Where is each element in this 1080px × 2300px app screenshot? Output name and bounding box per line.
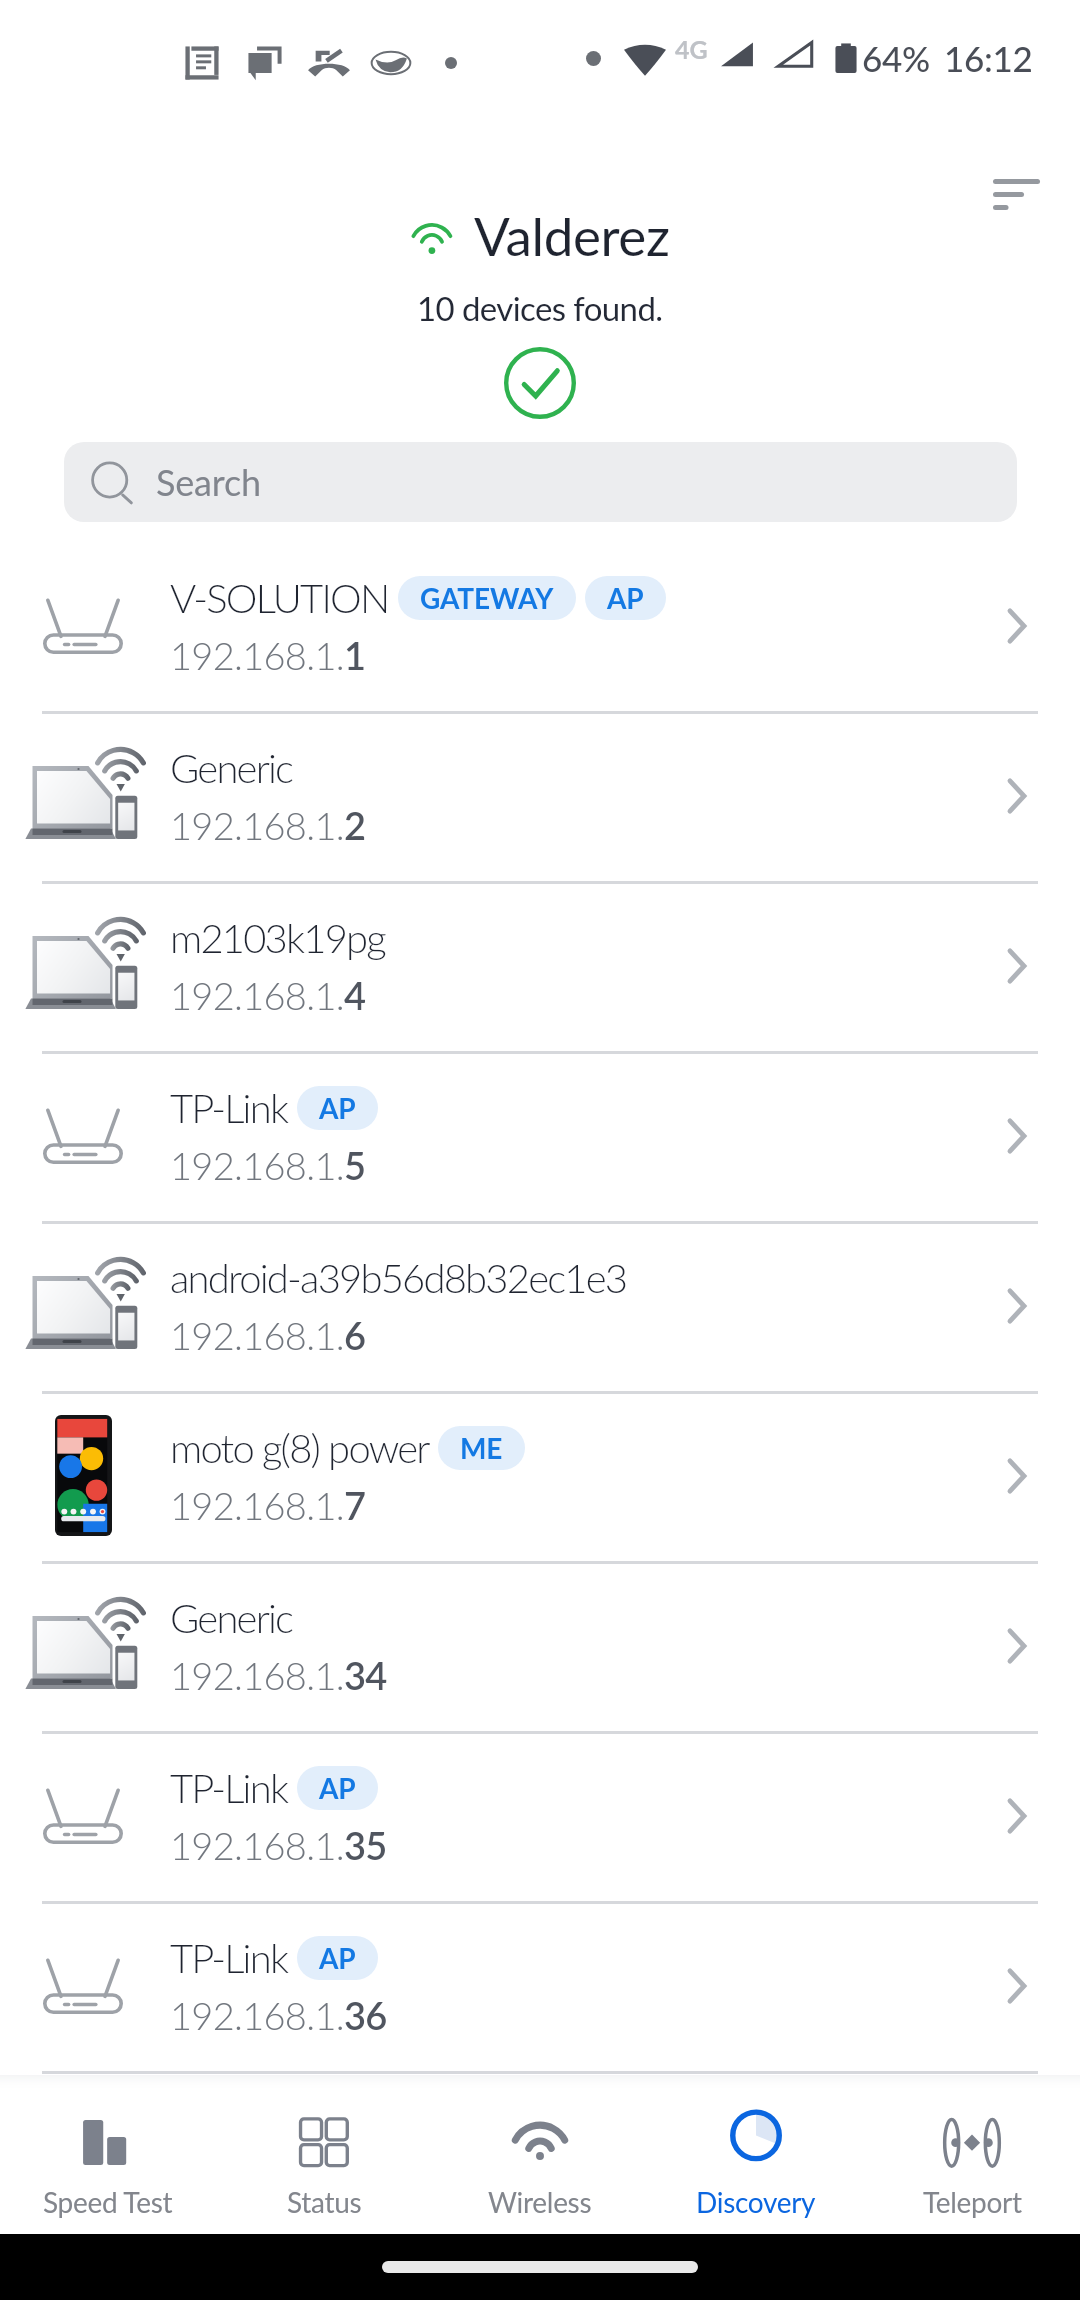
staticText: 7 xyxy=(344,1482,366,1528)
staticText: android-a39b56d8b32ec1e3 xyxy=(170,1254,627,1302)
staticText: 36 xyxy=(344,1992,387,2038)
button[interactable]: Teleport xyxy=(864,2089,1080,2237)
staticText: Generic xyxy=(170,744,293,792)
staticText: 192.168.1. xyxy=(170,1142,344,1188)
staticText: AP xyxy=(319,1941,356,1975)
button[interactable]: Discovery xyxy=(648,2089,864,2237)
staticText: 192.168.1. xyxy=(170,802,344,848)
staticText: TP-Link xyxy=(170,1934,288,1982)
staticText: 64% xyxy=(862,37,930,79)
staticText: AP xyxy=(319,1771,356,1805)
button[interactable]: android-a39b56d8b32ec1e3 xyxy=(0,1221,1080,1391)
staticText: 192.168.1. xyxy=(170,1482,344,1528)
button[interactable]: Search xyxy=(64,442,1017,522)
staticText: Generic xyxy=(170,1594,293,1642)
staticText: 4G xyxy=(675,34,708,64)
staticText: moto g(8) power xyxy=(170,1424,429,1472)
staticText: Discovery xyxy=(696,2185,816,2219)
staticText: 192.168.1. xyxy=(170,972,344,1018)
button[interactable]: moto g(8) power xyxy=(0,1391,1080,1561)
staticText: 192.168.1. xyxy=(170,1822,344,1868)
button[interactable]: Speed Test xyxy=(0,2089,216,2237)
staticText: 192.168.1. xyxy=(170,1992,344,2038)
staticText: AP xyxy=(607,581,644,615)
staticText: 5 xyxy=(344,1142,366,1188)
staticText: 1 xyxy=(344,632,366,678)
button[interactable]: TP-Link xyxy=(0,1051,1080,1221)
staticText: 192.168.1. xyxy=(170,1312,344,1358)
staticText: Search xyxy=(156,460,261,503)
staticText: GATEWAY xyxy=(420,581,554,615)
staticText: Valderez xyxy=(474,204,670,268)
staticText: 2 xyxy=(344,802,366,848)
staticText: 34 xyxy=(344,1652,387,1698)
button[interactable]: Generic xyxy=(0,1561,1080,1731)
staticText: 4 xyxy=(344,972,366,1018)
staticText: Wireless xyxy=(488,2185,592,2219)
staticText: 16:12 xyxy=(944,37,1033,79)
staticText: AP xyxy=(319,1091,356,1125)
staticText: TP-Link xyxy=(170,1084,288,1132)
button[interactable]: TP-Link xyxy=(0,1731,1080,1901)
button[interactable]: Generic xyxy=(0,711,1080,881)
staticText: Status xyxy=(287,2185,362,2219)
button[interactable]: Wireless xyxy=(432,2089,648,2237)
staticText: 10 devices found. xyxy=(417,288,663,328)
staticText: 6 xyxy=(344,1312,366,1358)
staticText: Speed Test xyxy=(43,2185,173,2219)
button[interactable]: Status xyxy=(216,2089,432,2237)
staticText: 192.168.1. xyxy=(170,632,344,678)
button[interactable]: TP-Link xyxy=(0,1901,1080,2071)
button[interactable]: Sort xyxy=(965,151,1068,238)
staticText: ME xyxy=(460,1431,503,1465)
staticText: Teleport xyxy=(923,2185,1022,2219)
staticText: 35 xyxy=(344,1822,387,1868)
staticText: V-SOLUTION xyxy=(170,574,389,622)
staticText: TP-Link xyxy=(170,1764,288,1812)
staticText: m2103k19pg xyxy=(170,914,385,962)
staticText: 192.168.1. xyxy=(170,1652,344,1698)
button[interactable]: m2103k19pg xyxy=(0,881,1080,1051)
button[interactable]: V-SOLUTION xyxy=(0,541,1080,711)
